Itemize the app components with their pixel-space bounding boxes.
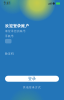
staticText: 请登录您的账号 xyxy=(5,29,26,33)
staticText: 验证码 xyxy=(5,52,14,55)
staticText: 手机号 xyxy=(5,34,14,38)
staticText: 其他登录方式 xyxy=(23,86,41,89)
button[interactable]: 其他登录方式 xyxy=(5,86,59,89)
button[interactable]: 登录 xyxy=(5,76,59,82)
staticText: 登录 xyxy=(28,76,36,81)
staticText: 欢迎登录账户 xyxy=(5,23,29,28)
staticText: 9:41 xyxy=(4,2,11,5)
